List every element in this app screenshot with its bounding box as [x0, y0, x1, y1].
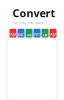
staticText: PPT — [34, 33, 40, 37]
staticText: XLS — [27, 33, 31, 37]
staticText: PDF, JPEG, PNG, DOCS — [12, 21, 42, 25]
staticText: CSV — [42, 33, 47, 37]
staticText: PDF — [50, 33, 55, 37]
staticText: PDF — [10, 33, 15, 37]
staticText: Convert — [12, 6, 55, 20]
staticText: DOC — [18, 33, 24, 37]
